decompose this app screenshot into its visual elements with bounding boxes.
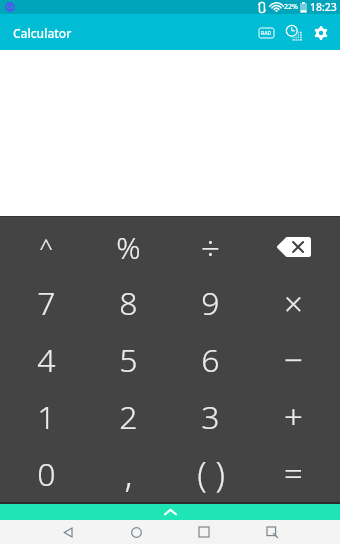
staticText: 0	[37, 452, 56, 496]
staticText: +	[284, 394, 303, 439]
button[interactable]: Angle unit RAD	[253, 19, 280, 46]
staticText: ^	[39, 231, 53, 264]
button[interactable]: Expand panel	[0, 504, 340, 520]
button[interactable]: 5	[87, 331, 169, 388]
button[interactable]: ^	[5, 219, 87, 275]
button[interactable]: 6	[169, 331, 252, 388]
button[interactable]: Screenshot	[238, 520, 306, 544]
button[interactable]: +	[252, 388, 335, 445]
staticText: 22%	[284, 2, 298, 12]
staticText: 2	[119, 395, 138, 439]
staticText: 8	[119, 281, 138, 325]
staticText: 5	[119, 338, 138, 382]
button[interactable]: 9	[169, 275, 252, 331]
button[interactable]: Back	[34, 520, 102, 544]
other: Backspace	[276, 237, 311, 257]
staticText: 18:23	[310, 0, 337, 14]
button[interactable]: Settings	[307, 19, 334, 46]
button[interactable]: 3	[169, 388, 252, 445]
staticText: ÷	[201, 225, 220, 270]
staticText: ×	[284, 281, 303, 326]
staticText: 6	[201, 338, 220, 382]
button[interactable]: Home	[102, 520, 170, 544]
button[interactable]: 8	[87, 275, 169, 331]
button[interactable]: 4	[5, 331, 87, 388]
staticText: 7	[37, 281, 56, 325]
button[interactable]: Backspace	[252, 219, 335, 275]
button[interactable]: ÷	[169, 219, 252, 275]
staticText: −	[284, 337, 303, 382]
staticText: =	[284, 451, 303, 496]
button[interactable]: ×	[252, 275, 335, 331]
button[interactable]: 1	[5, 388, 87, 445]
staticText: ( )	[197, 451, 225, 497]
staticText: 1	[37, 395, 56, 439]
button[interactable]: %	[87, 219, 169, 275]
button[interactable]: ( )	[169, 445, 252, 502]
button[interactable]: ,	[87, 445, 169, 502]
button[interactable]: −	[252, 331, 335, 388]
staticText: ,	[124, 449, 133, 498]
button[interactable]: =	[252, 445, 335, 502]
button[interactable]: History	[280, 19, 307, 46]
staticText: Calculator	[13, 25, 72, 41]
staticText: %	[116, 227, 141, 268]
button[interactable]: 2	[87, 388, 169, 445]
button[interactable]: Recent apps	[170, 520, 238, 544]
button[interactable]: 0	[5, 445, 87, 502]
staticText: 4	[37, 338, 56, 382]
staticText: RAD	[261, 30, 272, 37]
staticText: 9	[201, 281, 220, 325]
button[interactable]: 7	[5, 275, 87, 331]
staticText: 3	[201, 395, 220, 439]
